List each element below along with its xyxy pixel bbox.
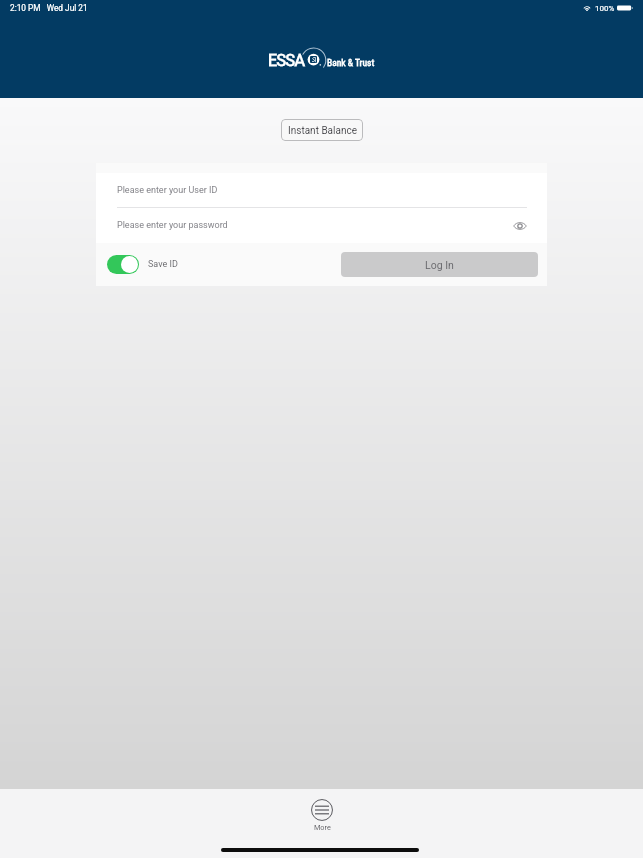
staticText: 100% — [595, 4, 615, 13]
button[interactable]: Log In — [341, 252, 538, 277]
button[interactable]: Save ID — [107, 255, 178, 274]
staticText: Please enter your password — [117, 220, 228, 231]
staticText: 2:10 PM Wed Jul 21 — [10, 3, 88, 13]
button[interactable]: Show password — [509, 215, 531, 237]
staticText: Please enter your User ID — [117, 185, 218, 196]
staticText: ESSA — [268, 51, 305, 70]
button[interactable]: Instant Balance — [281, 119, 363, 141]
button[interactable]: More — [297, 799, 347, 832]
button[interactable]: Please enter your User ID — [96, 173, 547, 207]
staticText: More — [314, 823, 331, 832]
staticText: Save ID — [148, 259, 178, 270]
button[interactable]: Please enter your password — [96, 208, 547, 243]
staticText: Bank & Trust — [327, 57, 375, 68]
staticText: Instant Balance — [288, 125, 357, 137]
staticText: Log In — [425, 259, 454, 271]
